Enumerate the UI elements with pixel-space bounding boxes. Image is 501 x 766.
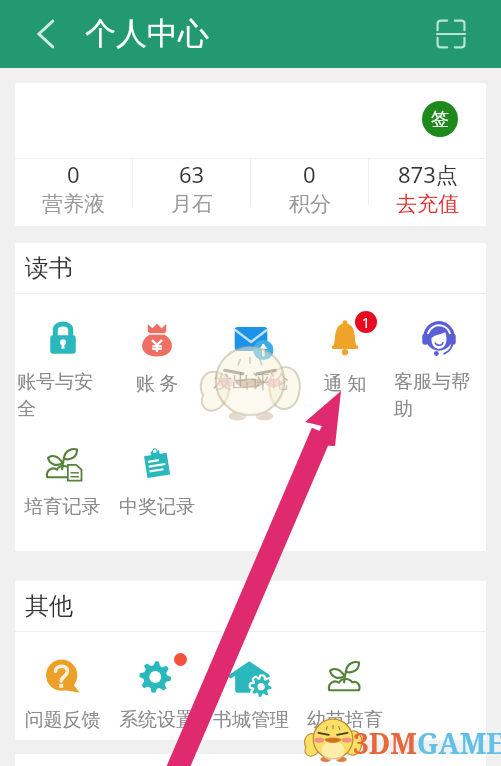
button[interactable]: 客服与帮助 xyxy=(392,310,486,421)
button[interactable]: 发出评论 xyxy=(204,310,298,394)
button[interactable]: 培育记录 xyxy=(15,435,110,519)
staticText: 账号与安全 xyxy=(17,370,108,421)
staticText: 0 xyxy=(67,159,80,189)
button[interactable]: 账号与安全 xyxy=(15,310,110,421)
button[interactable]: 873点 xyxy=(369,159,486,217)
staticText: 发出评论 xyxy=(206,370,296,394)
staticText: 书城管理 xyxy=(206,708,296,732)
staticText: 积分 xyxy=(289,191,331,217)
staticText: 系统设置 xyxy=(112,708,202,732)
button[interactable]: 签到 xyxy=(422,101,458,137)
staticText: 月石 xyxy=(171,191,213,217)
staticText: 去充值 xyxy=(396,191,459,217)
staticText: 个人中心 xyxy=(85,14,209,53)
staticText: 1 xyxy=(362,313,371,332)
staticText: 账 务 xyxy=(112,370,202,396)
button[interactable]: Back xyxy=(26,14,66,54)
staticText: 63 xyxy=(179,159,205,189)
button[interactable]: 幼苗培育 xyxy=(298,648,392,732)
staticText: 问题反馈 xyxy=(17,708,108,732)
button[interactable]: 问题反馈 xyxy=(15,648,110,732)
staticText: GAME xyxy=(417,724,501,762)
button[interactable]: 账 务 xyxy=(110,310,204,396)
staticText: 中奖记录 xyxy=(112,495,202,519)
staticText: 其他 xyxy=(25,591,73,621)
button[interactable]: 系统设置 xyxy=(110,648,204,732)
button[interactable]: 0 xyxy=(251,159,368,217)
staticText: 培育记录 xyxy=(17,495,108,519)
staticText: 0 xyxy=(303,159,316,189)
button[interactable]: 63 xyxy=(133,159,250,217)
staticText: 营养液 xyxy=(42,191,105,217)
staticText: 客服与帮助 xyxy=(394,370,484,421)
button[interactable]: 1 xyxy=(298,310,392,396)
staticText: 幼苗培育 xyxy=(300,708,390,732)
staticText: 读书 xyxy=(25,253,73,283)
button[interactable]: 书城管理 xyxy=(204,648,298,732)
button[interactable]: 中奖记录 xyxy=(110,435,204,519)
staticText: 通 知 xyxy=(300,370,390,396)
button[interactable]: 0 xyxy=(15,159,132,217)
staticText: 3DM xyxy=(353,724,417,762)
staticText: 签 xyxy=(431,108,449,131)
button[interactable]: Scan xyxy=(429,12,473,56)
staticText: 873点 xyxy=(398,159,458,189)
